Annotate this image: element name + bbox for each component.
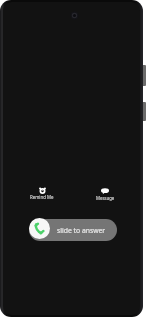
button[interactable]: Message <box>85 187 125 201</box>
button[interactable]: Remind Me <box>22 187 62 200</box>
staticText: slide to answer <box>57 226 106 235</box>
staticText: Message <box>96 195 115 201</box>
button[interactable]: slide to answer <box>29 219 117 241</box>
staticText: Remind Me <box>30 194 54 200</box>
button[interactable]: Answer call <box>29 218 50 239</box>
